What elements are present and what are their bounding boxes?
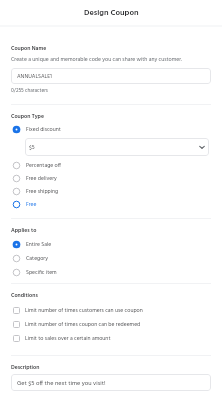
staticText: Coupon Type — [11, 112, 44, 121]
staticText: Specific item — [26, 268, 57, 277]
button[interactable]: Specific item — [0, 266, 222, 278]
button[interactable]: Free shipping — [0, 185, 222, 197]
button[interactable]: $5 — [25, 138, 209, 156]
other: Open discount amount menu — [199, 144, 205, 150]
button[interactable]: Get $5 off the next time you visit! — [11, 374, 211, 391]
staticText: Category — [26, 254, 48, 263]
button[interactable]: ANNUALSALE1 — [11, 68, 211, 84]
staticText: Percentage off — [26, 161, 61, 170]
staticText: Limit number of times coupon can be rede… — [25, 320, 141, 329]
button[interactable]: Limit number of times coupon can be rede… — [0, 317, 222, 331]
button[interactable]: Entire Sale — [0, 238, 222, 250]
staticText: Get $5 off the next time you visit! — [17, 378, 106, 388]
staticText: 0/255 characters — [11, 87, 48, 95]
staticText: Fixed discount — [26, 125, 61, 134]
staticText: Free — [26, 200, 37, 209]
staticText: Description — [11, 363, 40, 372]
staticText: Entire Sale — [26, 240, 52, 249]
button[interactable]: Limit number of times customers can use … — [0, 303, 222, 317]
button[interactable]: Free delivery — [0, 172, 222, 184]
staticText: Conditions — [11, 291, 38, 300]
staticText: Limit number of times customers can use … — [25, 306, 143, 315]
staticText: $5 — [29, 143, 35, 152]
button[interactable]: Free — [0, 198, 222, 210]
button[interactable]: Percentage off — [0, 159, 222, 171]
staticText: Applies to — [11, 226, 37, 235]
staticText: Free shipping — [26, 187, 59, 196]
button[interactable]: Fixed discount — [0, 123, 222, 135]
button[interactable]: Category — [0, 252, 222, 264]
staticText: Design Coupon — [84, 6, 139, 19]
button[interactable]: Limit to sales over a certain amount — [0, 331, 222, 345]
staticText: ANNUALSALE1 — [17, 72, 52, 81]
staticText: Coupon Name — [11, 44, 47, 53]
staticText: Create a unique and memorable code you c… — [11, 55, 183, 64]
staticText: Limit to sales over a certain amount — [25, 334, 111, 343]
staticText: Free delivery — [26, 174, 57, 183]
